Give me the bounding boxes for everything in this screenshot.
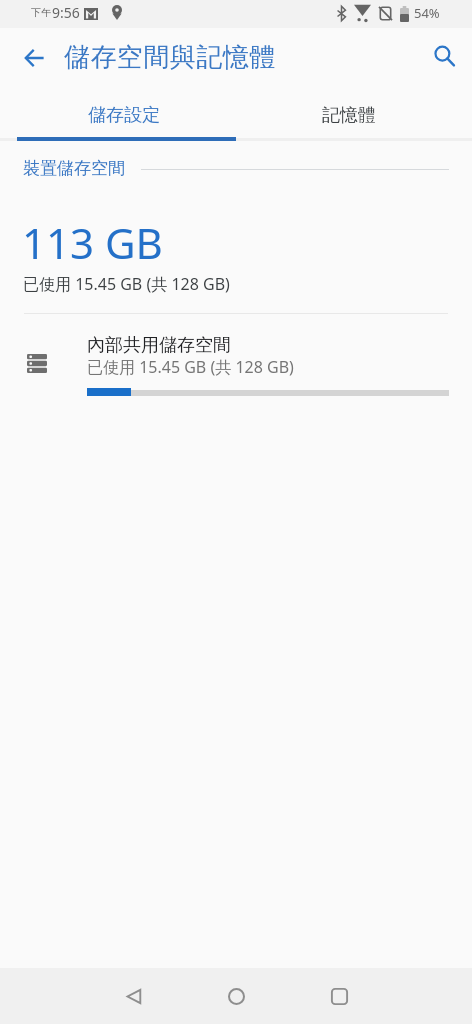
- button[interactable]: 返回: [110, 972, 158, 1020]
- button[interactable]: 搜尋: [422, 34, 466, 78]
- button[interactable]: 總覽: [315, 972, 363, 1020]
- staticText: 54%: [414, 4, 440, 22]
- staticText: 儲存設定: [88, 104, 160, 127]
- staticText: 9:56: [52, 3, 80, 22]
- staticText: 裝置儲存空間: [23, 158, 125, 179]
- button[interactable]: 內部共用儲存空間: [0, 325, 472, 403]
- staticText: 儲存空間與記憶體: [64, 41, 276, 74]
- staticText: 記憶體: [322, 104, 376, 127]
- button[interactable]: 主畫面: [212, 972, 260, 1020]
- staticText: 已使用 15.45 GB (共 128 GB): [87, 356, 294, 378]
- staticText: 內部共用儲存空間: [87, 334, 231, 357]
- button[interactable]: 返回: [14, 38, 54, 78]
- staticText: 已使用 15.45 GB (共 128 GB): [23, 273, 230, 295]
- button[interactable]: 記憶體: [236, 99, 461, 132]
- button[interactable]: 儲存設定: [11, 99, 236, 132]
- staticText: 下午: [31, 6, 51, 19]
- staticText: 113 GB: [22, 214, 163, 271]
